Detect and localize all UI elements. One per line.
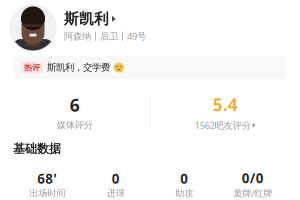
staticText: 基础数据 xyxy=(13,141,61,156)
staticText: 出场时间 xyxy=(29,187,65,199)
staticText: 0 xyxy=(112,170,120,187)
button[interactable]: 斯凯利 xyxy=(0,0,300,56)
staticText: 阿森纳丨后卫丨49号 xyxy=(64,30,146,42)
staticText: 1562吧友评分 xyxy=(195,119,251,131)
staticText: 媒体评分 xyxy=(57,119,93,131)
staticText: 6 xyxy=(70,93,80,116)
button[interactable]: 热评 xyxy=(0,56,300,79)
staticText: 斯凯利 xyxy=(64,10,109,28)
button[interactable]: 5.4 xyxy=(150,93,300,131)
staticText: 进球 xyxy=(107,187,125,199)
staticText: 0/0 xyxy=(242,169,264,187)
staticText: 热评 xyxy=(24,63,40,72)
staticText: 5.4 xyxy=(213,93,238,116)
staticText: 0 xyxy=(180,170,188,187)
staticText: 斯凯利，交学费 xyxy=(47,62,110,73)
staticText: 助攻 xyxy=(175,187,193,199)
staticText: 68' xyxy=(37,170,57,187)
staticText: 黄牌/红牌 xyxy=(233,187,272,199)
